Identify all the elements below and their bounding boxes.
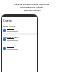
staticText: приложение, прият — [20, 6, 44, 9]
staticText: Лёгкая авторизация, удобное — [14, 3, 50, 6]
staticText: дизайн прило — [24, 9, 41, 12]
staticText: Счета — [3, 19, 12, 23]
button[interactable] — [2, 28, 37, 32]
staticText: Другие счета — [3, 36, 19, 39]
staticText: Мои счета — [3, 25, 16, 28]
button[interactable] — [2, 37, 37, 41]
button[interactable] — [2, 46, 37, 50]
